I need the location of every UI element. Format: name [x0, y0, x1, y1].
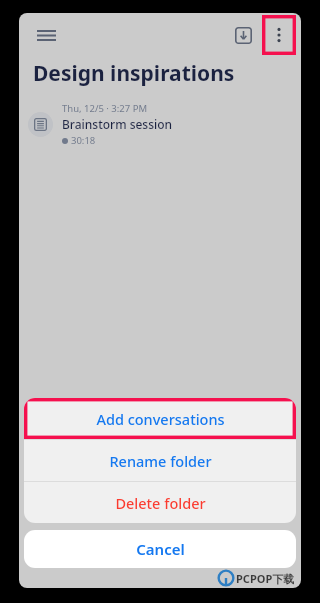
staticText: PCPOP下载 [236, 571, 295, 586]
staticText: Design inspirations [33, 59, 235, 88]
button[interactable]: Add conversations [24, 398, 296, 439]
button[interactable]: More options [262, 15, 296, 55]
button[interactable]: Menu [27, 16, 65, 54]
staticText: Rename folder [109, 451, 212, 471]
staticText: 30:18 [71, 134, 96, 147]
staticText: Add conversations [96, 409, 225, 429]
button[interactable]: Rename folder [24, 440, 296, 481]
staticText: Brainstorm session [62, 116, 173, 132]
staticText: Cancel [136, 539, 185, 559]
button[interactable]: Thu, 12/5 · 3:27 PM [19, 96, 301, 152]
button[interactable]: Cancel [24, 530, 296, 568]
button[interactable]: Delete folder [24, 482, 296, 523]
staticText: Delete folder [115, 493, 206, 513]
staticText: Thu, 12/5 · 3:27 PM [62, 102, 148, 115]
button[interactable]: Download [226, 18, 260, 52]
